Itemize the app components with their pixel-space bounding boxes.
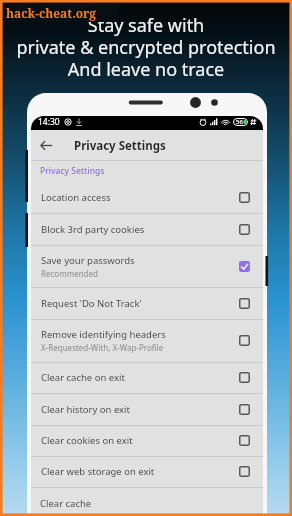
staticText: Recommended [41, 268, 98, 279]
staticText: Block 3rd party cookies [41, 223, 145, 236]
staticText: Stay safe with private & encrypted prote… [0, 13, 292, 81]
button[interactable]: Block 3rd party cookies [31, 213, 263, 245]
button[interactable]: Remove identifying headers [31, 319, 263, 362]
button[interactable]: Back [31, 130, 62, 161]
staticText: Privacy Settings [74, 138, 166, 154]
button[interactable]: Clear history on exit [31, 393, 263, 425]
staticText: Remove identifying headers [41, 328, 166, 341]
staticText: hack-cheat.org [6, 5, 97, 21]
staticText: Location access [41, 191, 111, 204]
staticText: Clear cookies on exit [41, 434, 133, 447]
button[interactable]: Save your passwords [31, 245, 263, 287]
button[interactable]: Clear cache [31, 488, 263, 516]
button[interactable]: Location access [31, 181, 263, 213]
staticText: Clear web storage on exit [41, 465, 155, 478]
button[interactable]: Clear web storage on exit [31, 456, 263, 487]
button[interactable]: Clear cookies on exit [31, 425, 263, 456]
staticText: 14:30 [38, 116, 60, 128]
button[interactable]: Request 'Do Not Track' [31, 287, 263, 319]
button[interactable]: Clear cache on exit [31, 362, 263, 393]
staticText: Clear cache [40, 497, 92, 510]
staticText: Request 'Do Not Track' [41, 297, 142, 310]
staticText: X-Requested-With, X-Wap-Profile [41, 342, 164, 353]
staticText: Save your passwords [41, 254, 135, 267]
staticText: 56 [236, 118, 243, 126]
staticText: Clear cache on exit [41, 371, 125, 384]
staticText: Clear history on exit [41, 403, 130, 416]
staticText: Privacy Settings [40, 165, 105, 177]
